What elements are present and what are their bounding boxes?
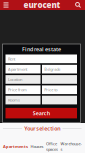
staticText: Rent [8, 56, 15, 61]
staticText: Warehouses [60, 141, 81, 152]
staticText: Rooms [8, 97, 20, 103]
staticText: Houses [30, 144, 43, 149]
staticText: Your selection [24, 125, 60, 132]
button[interactable]: Search [5, 108, 77, 118]
staticText: Office spaces [46, 141, 58, 152]
button[interactable]: Office spaces [46, 142, 58, 150]
button[interactable]: Location [5, 75, 40, 84]
staticText: eurocent [23, 0, 60, 10]
button[interactable]: Rent [5, 54, 77, 63]
button[interactable] [42, 75, 77, 84]
button[interactable]: Houses [30, 142, 43, 150]
staticText: Search [33, 109, 50, 117]
button[interactable]: Price from [5, 85, 40, 94]
staticText: Location [8, 77, 22, 82]
button[interactable]: Search [73, 0, 83, 10]
staticText: Apartments [3, 144, 28, 149]
button[interactable]: Apartment [5, 65, 40, 73]
button[interactable]: Menu [1, 0, 11, 10]
button[interactable]: Price to [42, 85, 77, 94]
staticText: Find real estate [22, 46, 61, 53]
button[interactable]: Belgrade [42, 65, 77, 73]
button[interactable]: Apartments [3, 142, 28, 150]
staticText: Price to [44, 87, 57, 92]
staticText: Price from [8, 87, 27, 92]
staticText: Apartment [8, 66, 27, 72]
button[interactable]: Rooms [5, 96, 40, 104]
staticText: Belgrade [44, 66, 60, 72]
button[interactable]: Warehouses [60, 142, 81, 150]
